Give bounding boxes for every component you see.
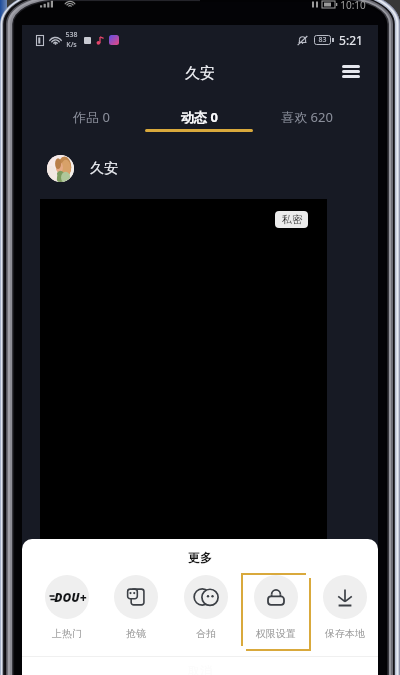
button[interactable]: 保存本地 xyxy=(310,573,378,651)
staticText: 喜欢 620 xyxy=(281,108,333,126)
button[interactable]: 动态 0 xyxy=(145,92,253,135)
staticText: 合拍 xyxy=(196,627,216,640)
staticText: 私密 xyxy=(282,213,302,226)
staticText: 久安 xyxy=(185,64,215,83)
button[interactable]: 权限设置 xyxy=(241,573,311,651)
button[interactable]: 喜欢 620 xyxy=(253,92,361,135)
staticText: 538 xyxy=(65,30,78,40)
staticText: 动态 0 xyxy=(181,108,218,126)
staticText: 久安 xyxy=(90,160,118,178)
staticText: 作品 0 xyxy=(73,108,110,126)
staticText: 83 xyxy=(318,35,327,45)
staticText: 更多 xyxy=(22,550,378,565)
button[interactable]: 久安 xyxy=(22,135,378,193)
staticText: K/s xyxy=(66,40,77,50)
button[interactable]: DOU+ xyxy=(32,573,102,651)
staticText: 5:21 xyxy=(339,32,363,48)
staticText: 10:10 xyxy=(340,0,366,12)
staticText: 权限设置 xyxy=(256,627,296,640)
button[interactable]: Menu xyxy=(335,55,367,87)
button[interactable]: 合拍 xyxy=(171,573,241,651)
button[interactable]: 抢镜 xyxy=(101,573,171,651)
staticText: 保存本地 xyxy=(325,627,365,640)
staticText: DOU+ xyxy=(54,589,87,605)
button[interactable]: 私密 xyxy=(275,211,308,228)
button[interactable]: 作品 0 xyxy=(37,92,145,135)
staticText: 上热门 xyxy=(52,627,82,640)
staticText: 抢镜 xyxy=(126,627,146,640)
